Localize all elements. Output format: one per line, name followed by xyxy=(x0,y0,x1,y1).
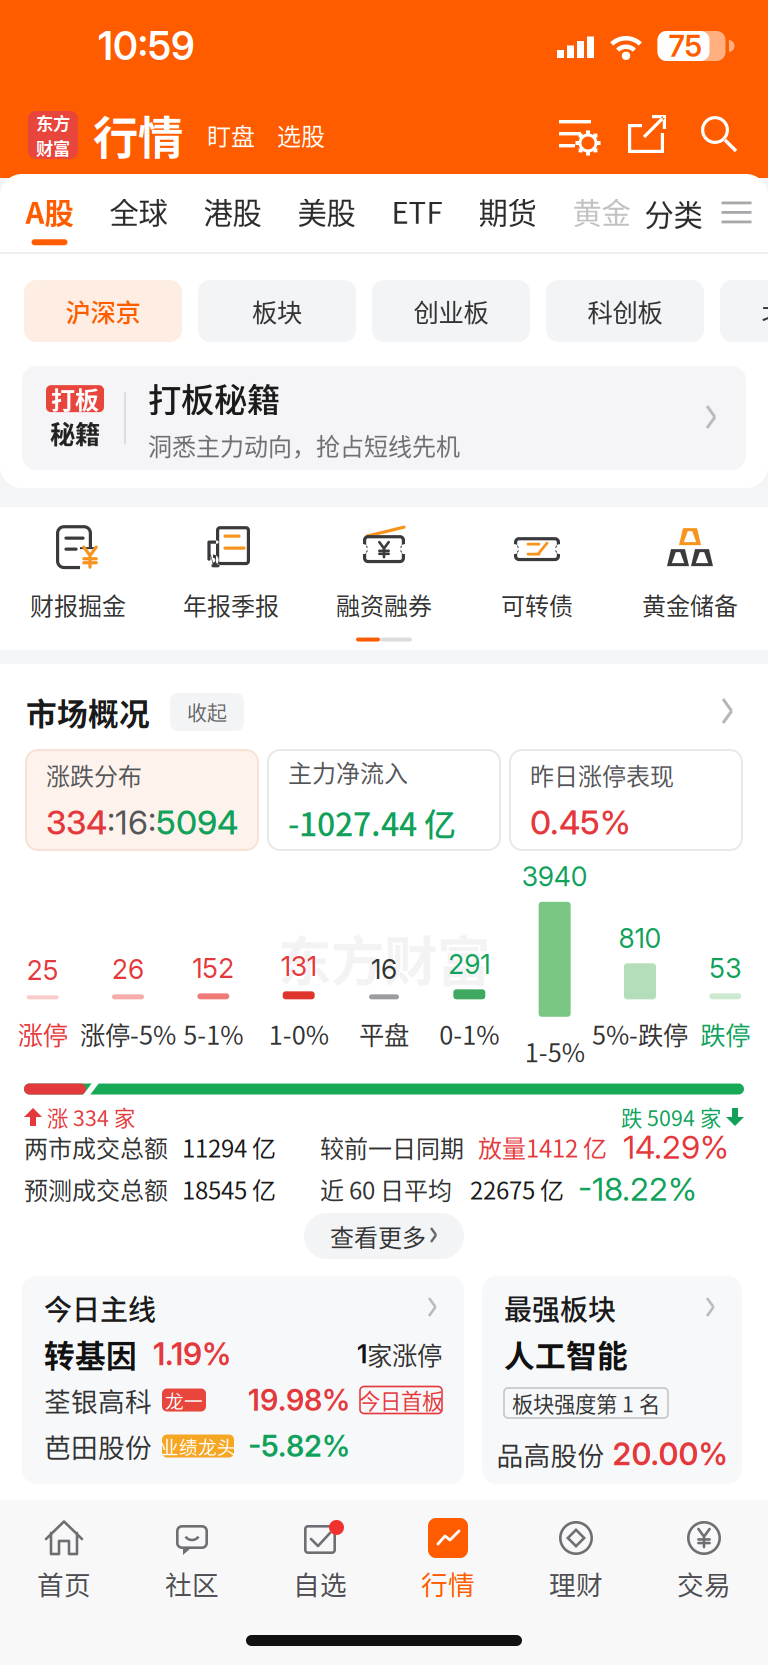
button[interactable]: 板块 xyxy=(198,280,356,342)
staticText: 黄金储备 xyxy=(642,587,738,622)
button[interactable]: 黄金 xyxy=(572,174,630,252)
staticText: 放量1412 亿 xyxy=(478,1130,607,1164)
button[interactable]: 最强板块 xyxy=(482,1276,742,1484)
staticText: 22675 亿 xyxy=(470,1172,564,1206)
staticText: 291 xyxy=(448,948,490,980)
staticText: 财报掘金 xyxy=(30,587,126,622)
staticText: 75 xyxy=(668,28,702,64)
button[interactable]: 主力净流入 xyxy=(268,750,500,850)
button[interactable]: ETF xyxy=(391,174,442,252)
staticText: 两市成交总额 xyxy=(24,1130,168,1164)
staticText: 131 xyxy=(281,950,317,982)
button[interactable]: 行情 xyxy=(384,1500,512,1612)
staticText: 行情 xyxy=(421,1564,475,1603)
staticText: 主力净流入 xyxy=(288,754,408,789)
button[interactable]: A股 xyxy=(25,174,73,252)
staticText: -1027.44 亿 xyxy=(288,799,456,845)
staticText: 152 xyxy=(192,952,234,984)
staticText: 龙一 xyxy=(165,1386,203,1413)
button[interactable]: More xyxy=(722,698,740,726)
button[interactable]: 期货 xyxy=(478,174,536,252)
staticText: 美股 xyxy=(297,190,355,232)
staticText: 品高股份 xyxy=(496,1435,604,1473)
staticText: 盯盘 xyxy=(207,118,255,152)
button[interactable]: All categories xyxy=(721,201,751,224)
button[interactable]: 自选 xyxy=(256,1500,384,1612)
button[interactable]: 可转债 xyxy=(460,521,613,621)
button[interactable]: 选股 xyxy=(277,109,325,161)
staticText: 交易 xyxy=(677,1564,731,1603)
button[interactable]: 科创板 xyxy=(546,280,704,342)
button[interactable]: 分类 xyxy=(644,174,702,252)
staticText: 1-0% xyxy=(269,1015,329,1052)
staticText: 25 xyxy=(27,954,59,986)
button[interactable]: Share xyxy=(626,111,674,159)
staticText: ETF xyxy=(391,190,442,232)
staticText: 港股 xyxy=(203,190,261,232)
staticText: 融资融券 xyxy=(336,587,432,622)
button[interactable]: 美股 xyxy=(297,174,355,252)
staticText: 涨停 xyxy=(18,1015,68,1052)
staticText: 26 xyxy=(112,953,144,985)
staticText: :16: xyxy=(107,802,156,842)
button[interactable]: 港股 xyxy=(203,174,261,252)
staticText: 板块强度第 1 名 xyxy=(512,1388,660,1418)
staticText: 业绩龙头 xyxy=(160,1432,236,1459)
button[interactable]: 收起 xyxy=(170,693,244,731)
button[interactable]: 全球 xyxy=(109,174,167,252)
staticText: 涨 334 家 xyxy=(47,1102,135,1132)
staticText: 20.00% xyxy=(612,1435,727,1472)
staticText: 1 xyxy=(357,1339,367,1369)
staticText: 北交所 xyxy=(761,293,768,329)
staticText: 10:59 xyxy=(98,23,195,69)
staticText: 理财 xyxy=(549,1564,603,1603)
button[interactable]: 交易 xyxy=(640,1500,768,1612)
staticText: 跌 5094 家 xyxy=(621,1102,721,1132)
staticText: 19.98% xyxy=(248,1382,350,1418)
button[interactable]: 财报掘金 xyxy=(1,521,154,621)
staticText: A股 xyxy=(25,190,73,232)
staticText: 人工智能 xyxy=(504,1332,628,1376)
button[interactable]: 沪深京 xyxy=(24,280,182,342)
button[interactable]: 北交所 xyxy=(720,280,768,342)
staticText: 芭田股份 xyxy=(44,1427,152,1465)
staticText: 1.19% xyxy=(153,1335,231,1372)
button[interactable]: 盯盘 xyxy=(207,109,255,161)
staticText: 今日首板 xyxy=(359,1385,443,1415)
button[interactable]: 首页 xyxy=(0,1500,128,1612)
staticText: 打板 xyxy=(51,381,99,416)
button[interactable]: 查看更多 xyxy=(304,1213,464,1259)
staticText: 分类 xyxy=(644,192,702,234)
staticText: 家涨停 xyxy=(367,1336,442,1372)
button[interactable]: 昨日涨停表现 xyxy=(510,750,742,850)
staticText: 创业板 xyxy=(413,293,488,329)
staticText: 打板秘籍 xyxy=(148,373,280,422)
button[interactable]: Sort settings xyxy=(556,111,606,159)
button[interactable]: 理财 xyxy=(512,1500,640,1612)
staticText: 11294 亿 xyxy=(182,1130,276,1164)
staticText: 53 xyxy=(709,952,741,984)
staticText: 黄金 xyxy=(572,190,630,232)
staticText: 全球 xyxy=(109,190,167,232)
staticText: 近 60 日平均 xyxy=(320,1172,452,1206)
button[interactable]: 创业板 xyxy=(372,280,530,342)
button[interactable]: 年报季报 xyxy=(154,521,307,621)
staticText: 3940 xyxy=(522,860,588,893)
button[interactable]: 社区 xyxy=(128,1500,256,1612)
staticText: 18545 亿 xyxy=(182,1172,276,1206)
button[interactable]: Search xyxy=(696,111,744,159)
button[interactable]: 今日主线 xyxy=(22,1276,464,1484)
staticText: 洞悉主力动向，抢占短线先机 xyxy=(148,428,460,463)
staticText: 平盘 xyxy=(359,1015,409,1052)
button[interactable]: 打板 xyxy=(22,366,746,470)
staticText: 荃银高科 xyxy=(44,1381,152,1419)
button[interactable]: 融资融券 xyxy=(307,521,460,621)
staticText: 14.29% xyxy=(623,1128,729,1166)
staticText: 0-1% xyxy=(439,1015,499,1052)
staticText: 5-1% xyxy=(183,1015,243,1052)
button[interactable]: 涨跌分布 xyxy=(26,750,258,850)
staticText: 科创板 xyxy=(587,293,662,329)
staticText: 涨跌分布 xyxy=(46,757,142,792)
staticText: 东方财富 xyxy=(278,919,490,997)
button[interactable]: 黄金储备 xyxy=(613,521,766,621)
